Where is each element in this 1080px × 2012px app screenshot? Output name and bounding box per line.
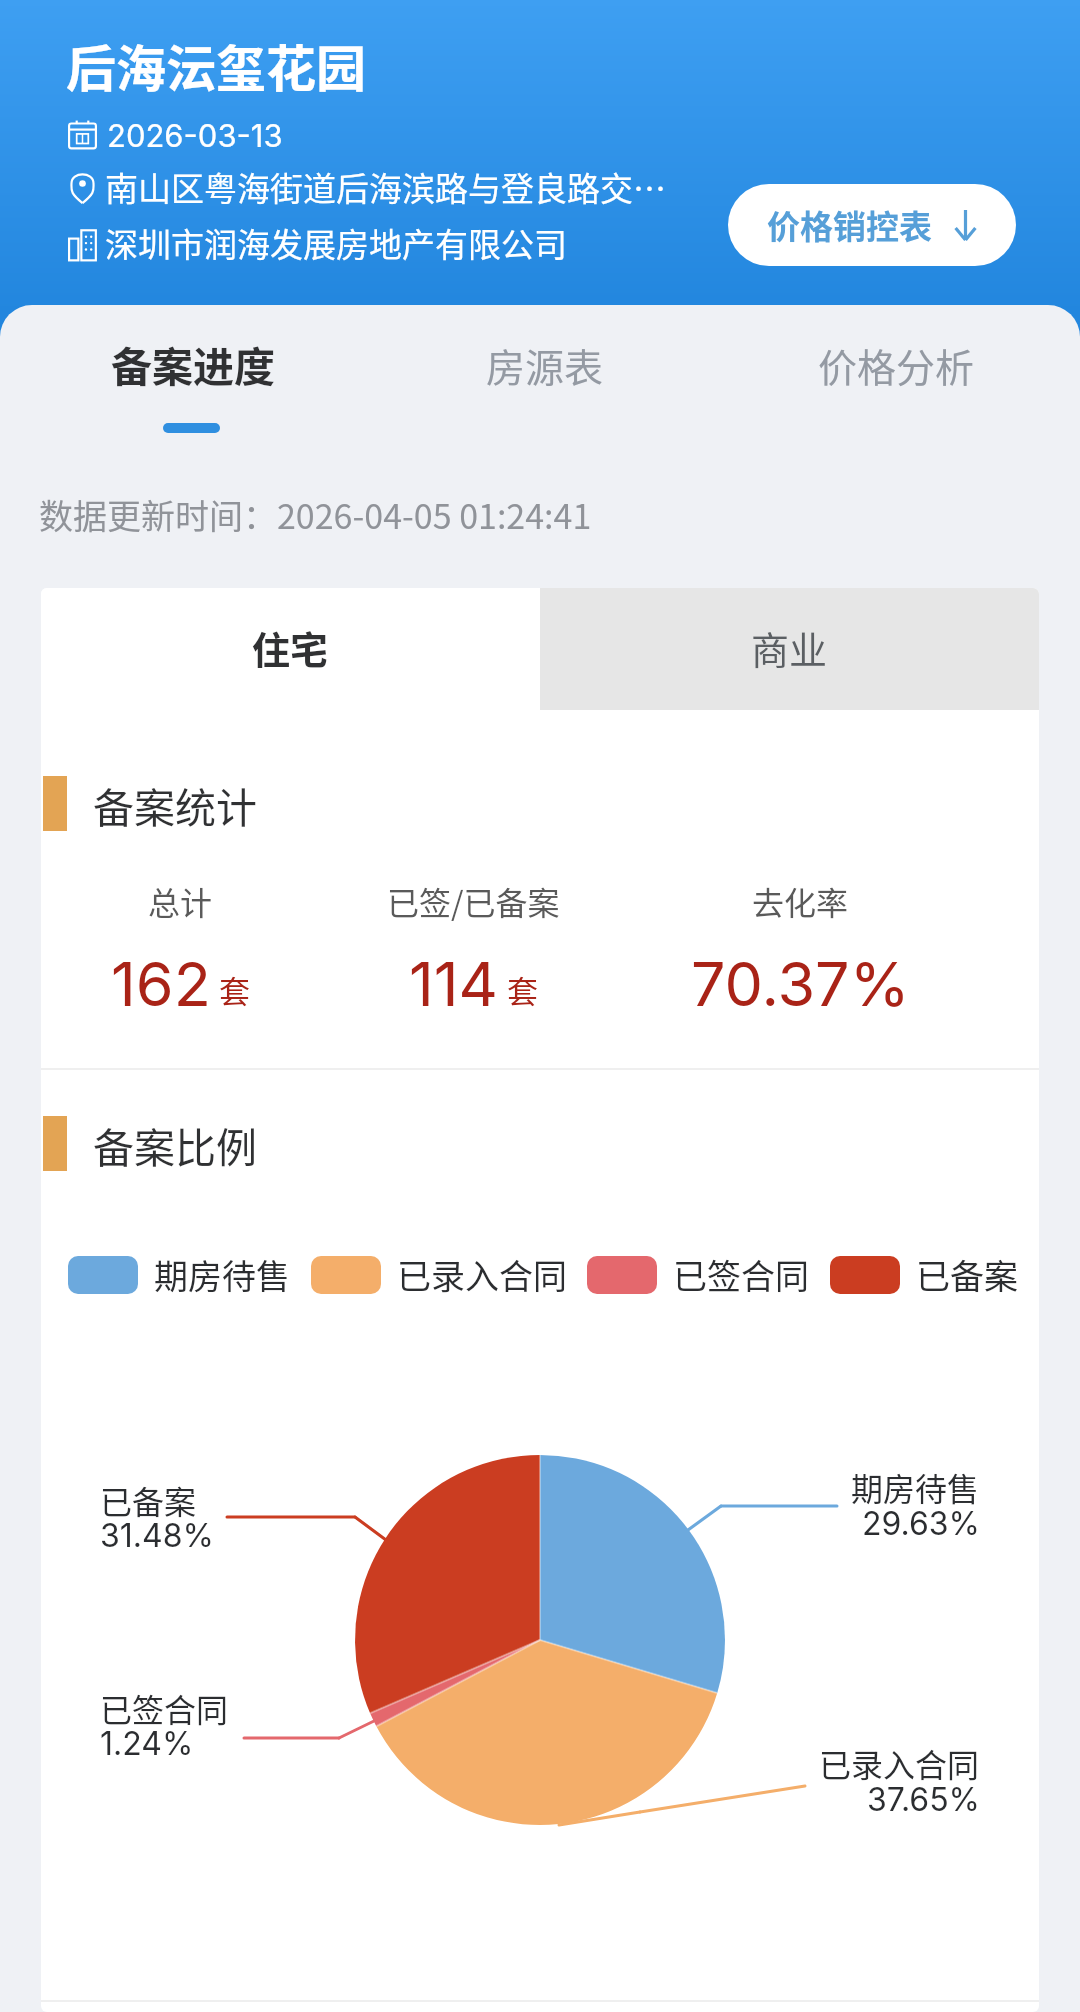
staticText: 已录入合同	[819, 1740, 980, 1786]
staticText: 已备案	[100, 1477, 197, 1523]
staticText: 70.37%	[691, 947, 910, 1021]
staticText: 已签合同	[100, 1685, 229, 1731]
staticText: 已备案	[916, 1250, 1018, 1299]
staticText: 备案统计	[93, 775, 257, 834]
button[interactable]: 房源表	[420, 305, 670, 445]
staticText: 套	[507, 967, 538, 1012]
button[interactable]: 价格销控表	[728, 184, 1016, 266]
staticText: 已录入合同	[397, 1250, 567, 1299]
staticText: 数据更新时间：2026-04-05 01:24:41	[39, 490, 592, 539]
staticText: 价格分析	[818, 337, 975, 393]
staticText: 162	[111, 947, 211, 1021]
other: Download price table	[954, 210, 977, 240]
staticText: 期房待售	[851, 1464, 980, 1510]
staticText: 1.24%	[100, 1724, 194, 1763]
staticText: 住宅	[252, 620, 329, 675]
staticText: 37.65%	[867, 1780, 980, 1819]
button[interactable]: 住宅	[41, 588, 540, 710]
staticText: 商业	[751, 620, 828, 675]
staticText: 备案进度	[111, 334, 275, 393]
staticText: 总计	[148, 878, 213, 924]
staticText: 套	[219, 967, 250, 1012]
staticText: 备案比例	[93, 1115, 257, 1174]
staticText: 去化率	[752, 878, 849, 924]
staticText: 后海沄玺花园	[66, 29, 366, 101]
staticText: 已签/已备案	[387, 878, 560, 924]
staticText: 114	[409, 947, 499, 1021]
staticText: 房源表	[486, 337, 604, 393]
staticText: 价格销控表	[767, 201, 932, 249]
staticText: 期房待售	[154, 1250, 290, 1299]
staticText: 南山区粤海街道后海滨路与登良路交…	[105, 163, 666, 211]
button[interactable]: 备案进度	[41, 305, 341, 445]
staticText: 2026-03-13	[107, 117, 283, 155]
staticText: 深圳市润海发展房地产有限公司	[105, 219, 567, 267]
staticText: 31.48%	[100, 1516, 214, 1555]
staticText: 29.63%	[862, 1504, 980, 1543]
button[interactable]: 价格分析	[771, 305, 1021, 445]
button[interactable]: 商业	[540, 588, 1039, 710]
staticText: 已签合同	[673, 1250, 809, 1299]
